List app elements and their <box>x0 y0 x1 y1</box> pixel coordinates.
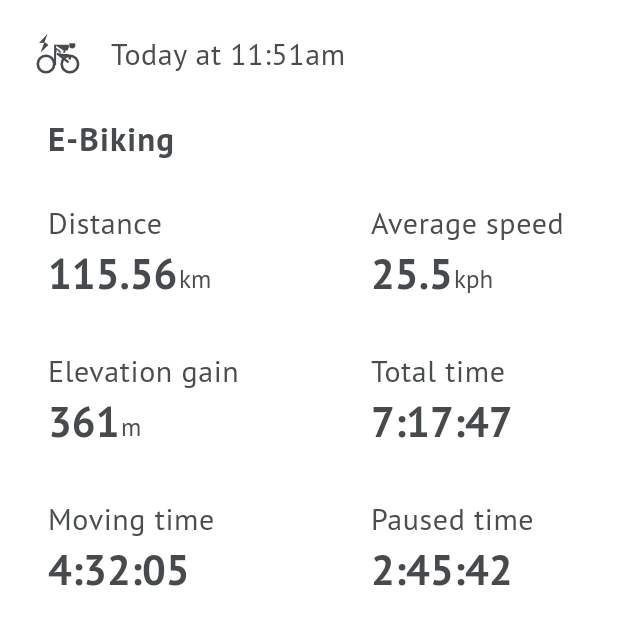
button[interactable]: 4:32:05 <box>48 542 190 596</box>
staticText: Today at 11:51am <box>111 34 346 73</box>
button[interactable]: 361 <box>48 394 142 448</box>
button[interactable]: 115.56 <box>48 246 212 300</box>
staticText: 25.5 <box>371 246 453 300</box>
button[interactable]: Distance <box>48 203 163 242</box>
staticText: m <box>121 411 142 443</box>
button[interactable]: Total time <box>371 351 506 390</box>
staticText: 361 <box>48 394 120 448</box>
staticText: Total time <box>371 351 506 390</box>
staticText: 115.56 <box>48 246 178 300</box>
staticText: Moving time <box>48 499 215 538</box>
button[interactable]: E-Biking <box>48 117 176 160</box>
staticText: Elevation gain <box>48 351 240 390</box>
button[interactable]: 25.5 <box>371 246 494 300</box>
staticText: 4:32:05 <box>48 542 190 596</box>
staticText: km <box>179 263 212 295</box>
button[interactable]: Today at 11:51am <box>111 34 346 73</box>
staticText: kph <box>454 263 494 295</box>
button[interactable]: 7:17:47 <box>371 394 513 448</box>
button[interactable]: E-bike activity <box>35 31 81 77</box>
button[interactable]: Elevation gain <box>48 351 240 390</box>
button[interactable]: Average speed <box>371 203 565 242</box>
staticText: Paused time <box>371 499 535 538</box>
button[interactable]: Paused time <box>371 499 535 538</box>
staticText: 2:45:42 <box>371 542 513 596</box>
staticText: Distance <box>48 203 163 242</box>
staticText: E-Biking <box>48 117 176 160</box>
button[interactable]: 2:45:42 <box>371 542 513 596</box>
button[interactable]: Moving time <box>48 499 215 538</box>
staticText: 7:17:47 <box>371 394 513 448</box>
staticText: Average speed <box>371 203 565 242</box>
